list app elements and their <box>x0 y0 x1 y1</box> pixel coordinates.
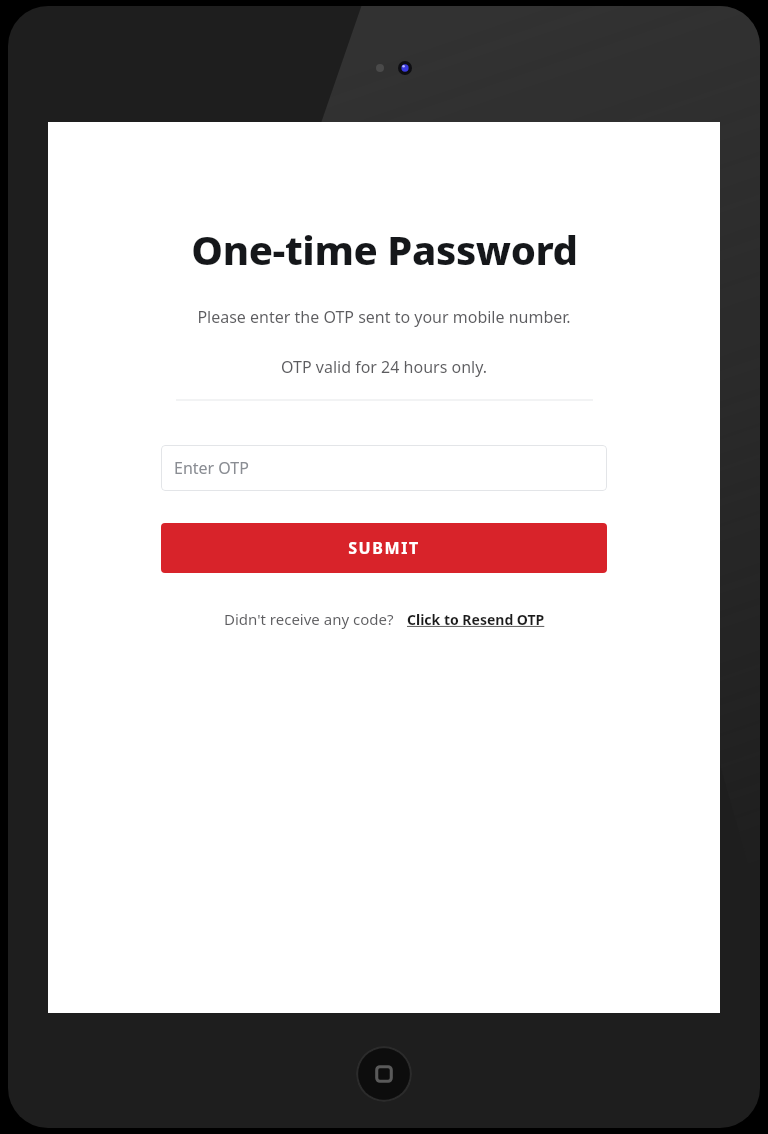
staticText: Enter OTP <box>174 457 249 479</box>
button[interactable]: Enter OTP <box>161 445 607 491</box>
button[interactable]: Click to Resend OTP <box>407 610 545 629</box>
staticText: One-time Password <box>191 222 578 276</box>
staticText: OTP valid for 24 hours only. <box>281 356 487 378</box>
staticText: Please enter the OTP sent to your mobile… <box>197 306 571 328</box>
staticText: SUBMIT <box>348 537 420 559</box>
button[interactable]: SUBMIT <box>161 523 607 573</box>
staticText: Click to Resend OTP <box>407 610 545 629</box>
staticText: Didn't receive any code? <box>224 609 394 629</box>
button[interactable]: Home <box>356 1046 412 1102</box>
